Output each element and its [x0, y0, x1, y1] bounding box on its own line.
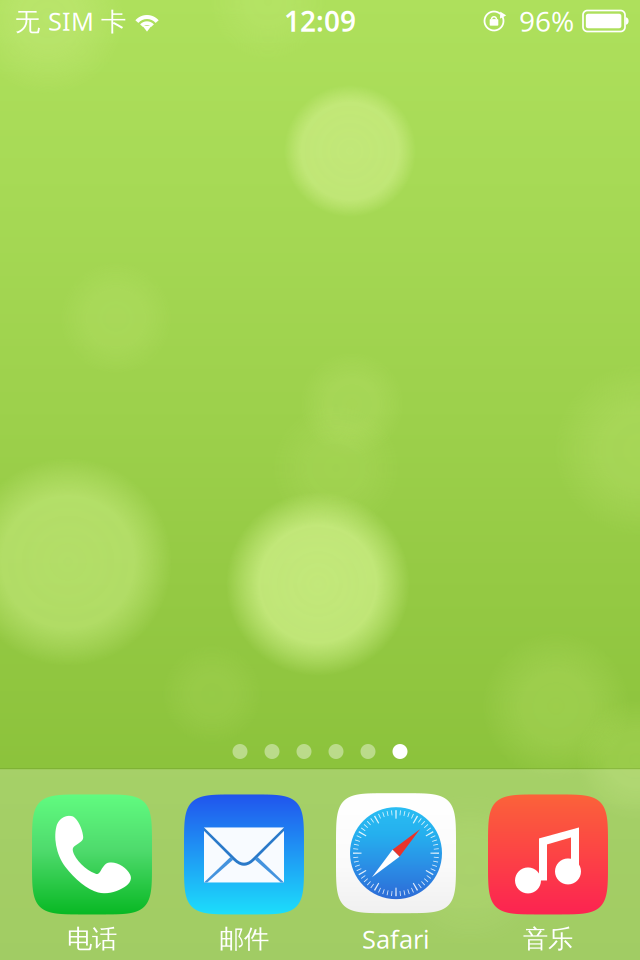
button[interactable]: 电话 [32, 794, 152, 954]
button[interactable]: Safari [336, 793, 456, 956]
staticText: 电话 [67, 923, 117, 954]
staticText: 音乐 [523, 923, 573, 954]
staticText: 12:09 [284, 2, 356, 40]
staticText: 邮件 [219, 923, 269, 954]
button[interactable]: 音乐 [488, 794, 608, 954]
button[interactable]: 邮件 [184, 794, 304, 954]
staticText: 96% [519, 2, 574, 40]
staticText: 无 SIM 卡 [15, 4, 126, 38]
staticText: Safari [362, 922, 430, 956]
